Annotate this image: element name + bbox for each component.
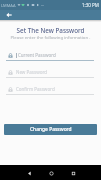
staticText: ··· [41,3,45,8]
button[interactable]: Current Password [6,50,94,61]
staticText: Set The New Password [0,26,101,35]
button[interactable]: New Password [6,67,94,78]
button[interactable]: Confirm Password [6,84,94,95]
button[interactable]: Recents [66,166,80,180]
staticText: 1:30 PM [82,2,99,8]
staticText: Please enter the following information . [0,34,101,40]
button[interactable]: Back [22,166,36,180]
button[interactable]: Home [44,166,58,180]
button[interactable]: Back [4,10,13,19]
staticText: Confirm Password [16,86,55,92]
staticText: New Password [16,69,47,75]
staticText: LMMAA [1,3,16,8]
staticText: Current Password [18,52,56,58]
button[interactable]: Change Password [4,124,97,135]
staticText: Change Password [30,126,72,133]
